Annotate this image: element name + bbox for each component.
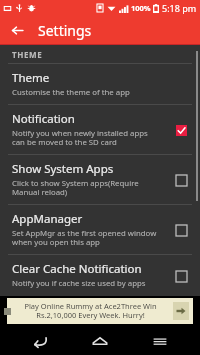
button[interactable]: Notification checked xyxy=(172,121,190,139)
button[interactable]: Clear Cache Notification unchecked xyxy=(172,267,190,285)
staticText: Notification xyxy=(12,111,75,127)
staticText: 5:18 pm xyxy=(162,2,197,14)
button[interactable]: Recent apps xyxy=(140,326,180,355)
staticText: Notify you when newly installed apps can… xyxy=(12,128,148,148)
staticText: Settings xyxy=(38,21,92,40)
staticText: Play Online Rummy at Ace2Three Win Rs.2,… xyxy=(24,301,157,321)
staticText: Notify you if cache size used by apps la… xyxy=(12,278,146,290)
staticText: Customise the theme of the app xyxy=(12,87,130,98)
button[interactable]: Show System Apps xyxy=(0,155,200,205)
button[interactable]: Play Online Rummy at Ace2Three Win Rs.2,… xyxy=(7,298,193,324)
button[interactable]: AppManager xyxy=(0,205,200,255)
button[interactable]: AppManager unchecked xyxy=(172,221,190,239)
staticText: Click to show System apps(Require Manual… xyxy=(12,178,139,198)
button[interactable]: Open ad xyxy=(173,302,189,320)
button[interactable]: Theme xyxy=(0,64,200,105)
button[interactable]: Show System Apps unchecked xyxy=(172,171,190,189)
staticText: Theme xyxy=(12,70,50,86)
button[interactable]: Home xyxy=(80,326,120,355)
button[interactable]: Back xyxy=(6,19,28,41)
staticText: Set AppMgr as the first opened window wh… xyxy=(12,228,157,248)
staticText: THEME xyxy=(12,49,43,60)
staticText: 100% xyxy=(131,3,151,13)
button[interactable]: Notification xyxy=(0,105,200,155)
staticText: Clear Cache Notification xyxy=(12,261,142,277)
button[interactable]: Back xyxy=(20,326,60,355)
button[interactable]: Clear Cache Notification xyxy=(0,255,200,296)
staticText: AppManager xyxy=(12,211,83,227)
staticText: Show System Apps xyxy=(12,161,114,177)
